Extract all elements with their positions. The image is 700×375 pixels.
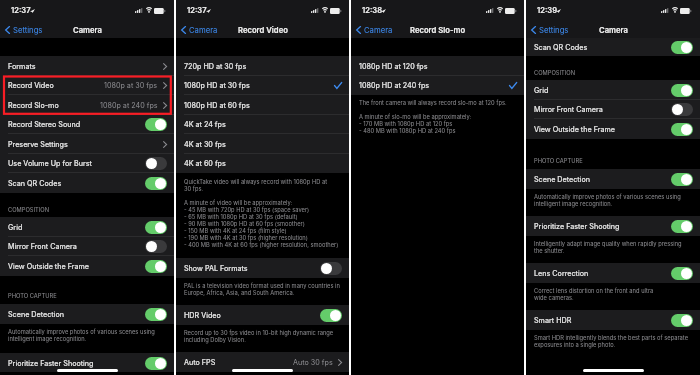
- staticText: Scan QR Codes: [8, 179, 62, 188]
- staticText: Lens Correction: [534, 269, 589, 278]
- button[interactable]: 1080p HD at 30 fps: [176, 76, 349, 95]
- staticText: Smart HDR intelligently blends the best …: [534, 334, 689, 348]
- button[interactable]: 1080p HD at 240 fps: [351, 76, 524, 95]
- staticText: 1080p at 240 fps: [100, 101, 158, 110]
- button[interactable]: On: [320, 309, 342, 322]
- staticText: Record Video: [238, 26, 288, 35]
- button[interactable]: On: [671, 84, 693, 97]
- staticText: PHOTO CAPTURE: [8, 292, 57, 299]
- button[interactable]: On: [145, 357, 167, 370]
- staticText: 12:38: [362, 6, 383, 15]
- staticText: 1080p at 30 fps: [104, 81, 158, 90]
- staticText: 1080p HD at 60 fps: [184, 101, 250, 110]
- button[interactable]: 4K at 60 fps: [176, 154, 349, 173]
- staticText: 4K at 24 fps: [184, 120, 226, 129]
- staticText: Preserve Settings: [8, 140, 68, 149]
- button[interactable]: Record Stereo Sound: [0, 115, 174, 134]
- button[interactable]: On: [671, 267, 693, 280]
- staticText: Automatically improve photos of various …: [8, 328, 155, 342]
- staticText: Scene Detection: [8, 310, 64, 319]
- button[interactable]: Off: [145, 240, 167, 253]
- staticText: Auto 30 fps: [293, 358, 333, 367]
- button[interactable]: On: [145, 308, 167, 321]
- staticText: Prioritize Faster Shooting: [8, 359, 94, 368]
- button[interactable]: 4K at 30 fps: [176, 134, 349, 154]
- button[interactable]: HDR Video: [176, 305, 349, 325]
- button[interactable]: On: [671, 314, 693, 327]
- button[interactable]: On: [145, 118, 167, 131]
- staticText: PAL is a television video format used in…: [184, 282, 340, 296]
- button[interactable]: Back to Settings: [526, 22, 575, 38]
- button[interactable]: Lens Correction: [526, 263, 700, 283]
- staticText: Mirror Front Camera: [534, 105, 603, 114]
- staticText: Camera: [364, 26, 393, 35]
- button[interactable]: Back to Settings: [0, 22, 49, 38]
- button[interactable]: Scene Detection: [0, 304, 174, 324]
- button[interactable]: 720p HD at 30 fps: [176, 56, 349, 76]
- button[interactable]: Back to Camera: [176, 22, 224, 38]
- button[interactable]: Prioritize Faster Shooting: [526, 216, 700, 236]
- staticText: Grid: [534, 86, 549, 95]
- button[interactable]: Show PAL Formats: [176, 258, 349, 278]
- staticText: 1080p HD at 30 fps: [184, 81, 250, 90]
- staticText: Camera: [599, 26, 628, 35]
- button[interactable]: Off: [320, 262, 342, 275]
- button[interactable]: View Outside the Frame: [0, 256, 174, 276]
- button[interactable]: On: [671, 41, 693, 54]
- button[interactable]: On: [145, 260, 167, 273]
- staticText: Record Slo-mo: [410, 26, 466, 35]
- button[interactable]: On: [145, 177, 167, 190]
- button[interactable]: Grid: [526, 80, 700, 100]
- staticText: Record Video: [8, 81, 54, 90]
- staticText: Record Stereo Sound: [8, 120, 81, 129]
- button[interactable]: Mirror Front Camera: [0, 237, 174, 256]
- staticText: The front camera will always record slo-…: [359, 99, 507, 134]
- button[interactable]: Record Video: [0, 76, 174, 95]
- staticText: 4K at 30 fps: [184, 140, 226, 149]
- staticText: 4K at 60 fps: [184, 159, 226, 168]
- button[interactable]: Record Slo-mo: [0, 95, 174, 115]
- staticText: Auto FPS: [184, 358, 216, 367]
- button[interactable]: Back to Camera: [351, 22, 399, 38]
- staticText: Formats: [8, 62, 36, 71]
- button[interactable]: 1080p HD at 120 fps: [351, 56, 524, 76]
- staticText: 12:39: [537, 6, 558, 15]
- button[interactable]: Scene Detection: [526, 169, 700, 189]
- button[interactable]: Use Volume Up for Burst: [0, 154, 174, 173]
- staticText: COMPOSITION: [534, 69, 576, 76]
- staticText: Settings: [539, 26, 569, 35]
- button[interactable]: View Outside the Frame: [526, 119, 700, 139]
- button[interactable]: Preserve Settings: [0, 134, 174, 154]
- staticText: Smart HDR: [534, 316, 572, 325]
- button[interactable]: Scan QR Codes: [526, 38, 700, 56]
- button[interactable]: Scan QR Codes: [0, 173, 174, 193]
- staticText: Scan QR Codes: [534, 43, 588, 52]
- staticText: 12:37: [11, 6, 31, 15]
- button[interactable]: Auto FPS: [176, 352, 349, 372]
- staticText: HDR Video: [184, 311, 221, 320]
- staticText: View Outside the Frame: [8, 262, 89, 271]
- button[interactable]: 1080p HD at 60 fps: [176, 95, 349, 115]
- button[interactable]: Prioritize Faster Shooting: [0, 353, 174, 373]
- button[interactable]: Off: [671, 103, 693, 116]
- staticText: Record up to 30 fps video in 10-bit high…: [184, 329, 334, 343]
- button[interactable]: Grid: [0, 217, 174, 237]
- button[interactable]: On: [671, 220, 693, 233]
- button[interactable]: Mirror Front Camera: [526, 100, 700, 119]
- button[interactable]: Smart HDR: [526, 310, 700, 330]
- staticText: Camera: [189, 26, 218, 35]
- button[interactable]: Off: [145, 157, 167, 170]
- staticText: Settings: [13, 26, 43, 35]
- staticText: 1080p HD at 120 fps: [359, 62, 428, 71]
- button[interactable]: 4K at 24 fps: [176, 115, 349, 134]
- staticText: Grid: [8, 223, 23, 232]
- button[interactable]: Formats: [0, 56, 174, 76]
- staticText: 1080p HD at 240 fps: [359, 81, 430, 90]
- staticText: Mirror Front Camera: [8, 242, 77, 251]
- staticText: Camera: [73, 26, 102, 35]
- staticText: Prioritize Faster Shooting: [534, 222, 620, 231]
- button[interactable]: On: [671, 123, 693, 136]
- button[interactable]: On: [145, 221, 167, 234]
- staticText: Correct lens distortion on the front and…: [534, 287, 654, 301]
- button[interactable]: On: [671, 173, 693, 186]
